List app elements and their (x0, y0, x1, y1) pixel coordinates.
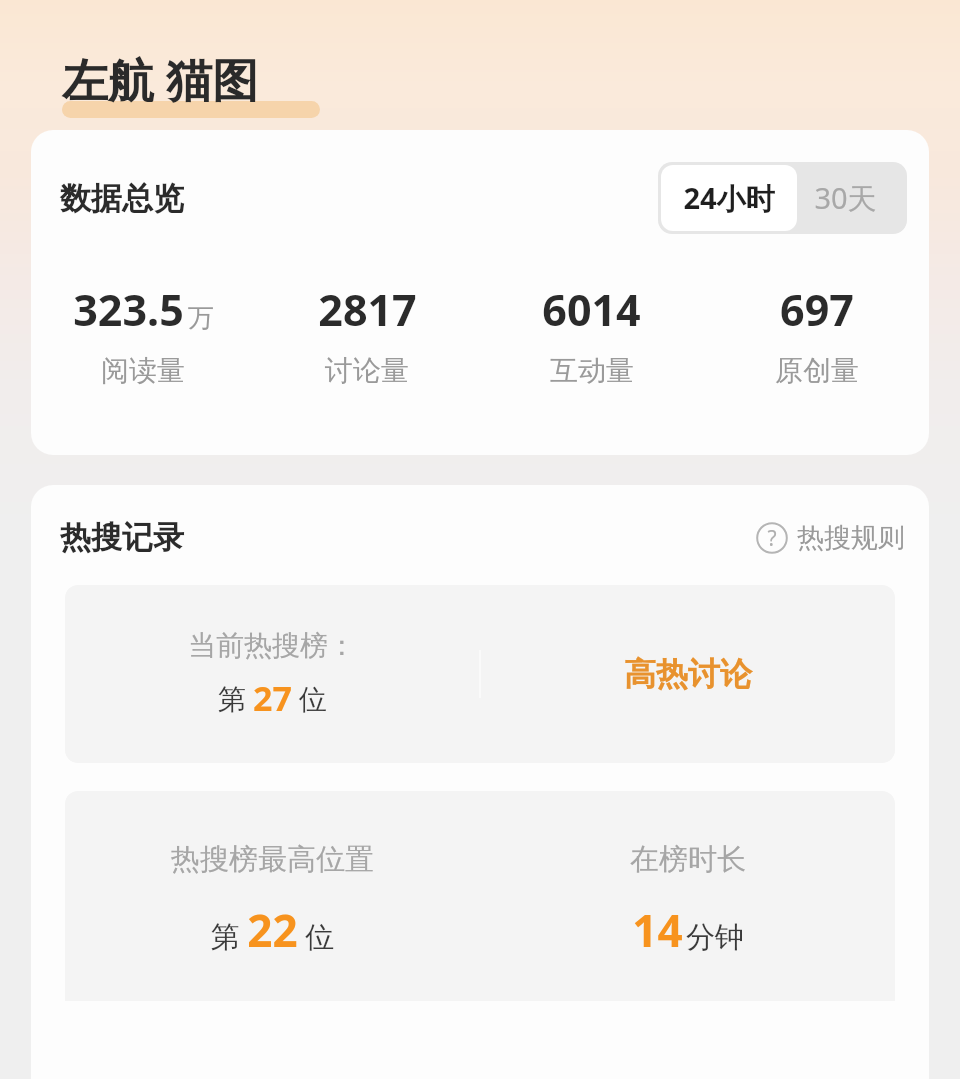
staticText: 阅读量 (101, 353, 185, 388)
staticText: 第 (218, 682, 246, 717)
button[interactable]: 热搜规则说明 (756, 521, 905, 555)
staticText: 在榜时长 (630, 841, 746, 878)
other: 热搜规则说明 (756, 522, 788, 554)
button[interactable]: 24小时 (661, 165, 797, 231)
staticText: 热搜榜最高位置 (171, 841, 374, 878)
button[interactable]: 当前热搜榜： (65, 585, 895, 763)
staticText: 27 (253, 675, 292, 721)
staticText: 6014 (542, 280, 641, 339)
staticText: 位 (299, 682, 327, 717)
staticText: 2817 (318, 280, 417, 339)
staticText: 高热讨论 (624, 654, 752, 694)
staticText: 22 (247, 900, 298, 960)
button[interactable]: 697 (704, 280, 929, 388)
staticText: 位 (305, 919, 334, 956)
staticText: 热搜记录 (60, 518, 184, 557)
staticText: 左航 猫图 (62, 48, 258, 111)
button[interactable]: 323.5 (31, 280, 255, 388)
staticText: 697 (780, 280, 854, 339)
staticText: 分钟 (686, 919, 744, 956)
staticText: 互动量 (550, 353, 634, 388)
staticText: 24小时 (683, 178, 775, 218)
button[interactable]: 6014 (479, 280, 704, 388)
staticText: 第 (211, 919, 240, 956)
staticText: 万 (188, 302, 214, 335)
staticText: 30天 (814, 178, 877, 218)
staticText: 当前热搜榜： (188, 628, 356, 663)
staticText: 14 (632, 900, 683, 960)
staticText: 323.5 (73, 280, 184, 339)
staticText: 讨论量 (325, 353, 409, 388)
button[interactable]: 2817 (255, 280, 479, 388)
button[interactable]: 热搜榜最高位置 (65, 791, 895, 1001)
staticText: 数据总览 (60, 179, 184, 218)
staticText: ? (767, 524, 777, 553)
staticText: 原创量 (775, 353, 859, 388)
button[interactable]: 30天 (800, 162, 907, 234)
staticText: 热搜规则 (797, 521, 905, 555)
